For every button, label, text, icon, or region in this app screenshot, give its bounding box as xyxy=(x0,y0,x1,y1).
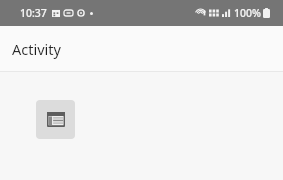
staticText: 10:37 xyxy=(20,6,47,20)
staticText: Activity xyxy=(12,39,61,59)
button[interactable]: Open web activity xyxy=(36,100,75,139)
staticText: 100% xyxy=(234,6,261,20)
